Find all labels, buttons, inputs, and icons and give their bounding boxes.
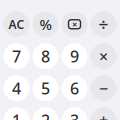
staticText: % (39, 14, 51, 34)
staticText: × (72, 18, 77, 30)
staticText: ÷ (98, 13, 108, 36)
button[interactable]: 8 (32, 43, 58, 69)
button[interactable]: % (32, 11, 58, 37)
button[interactable]: 5 (32, 75, 58, 101)
button[interactable]: 9 (61, 43, 87, 69)
button[interactable]: Delete (61, 11, 87, 37)
staticText: 4 (12, 78, 21, 99)
button[interactable]: 3 (61, 107, 87, 120)
button[interactable]: − (90, 75, 116, 101)
staticText: + (99, 110, 108, 120)
staticText: − (99, 78, 108, 99)
button[interactable]: + (90, 107, 116, 120)
button[interactable]: 4 (3, 75, 29, 101)
staticText: 1 (12, 110, 21, 120)
button[interactable]: × (90, 43, 116, 69)
button[interactable]: AC (3, 11, 29, 37)
button[interactable]: 1 (3, 107, 29, 120)
staticText: 5 (41, 78, 50, 99)
button[interactable]: 2 (32, 107, 58, 120)
button[interactable]: 6 (61, 75, 87, 101)
staticText: × (99, 46, 108, 67)
staticText: 9 (70, 46, 79, 67)
staticText: 8 (41, 46, 50, 67)
button[interactable]: 7 (3, 43, 29, 69)
staticText: AC (8, 16, 24, 32)
button[interactable]: ÷ (90, 11, 116, 37)
staticText: 3 (70, 110, 79, 120)
staticText: 6 (70, 78, 79, 99)
staticText: 2 (41, 110, 50, 120)
staticText: 7 (12, 46, 21, 67)
